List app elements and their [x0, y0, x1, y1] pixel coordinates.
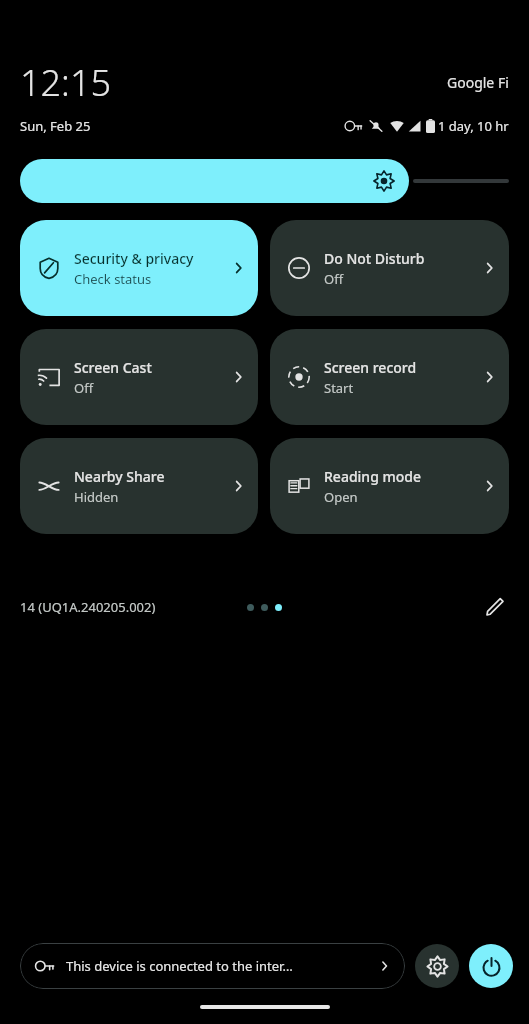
button[interactable]: Screen record	[270, 329, 509, 425]
button[interactable]: Security & privacy	[20, 220, 258, 316]
staticText: This device is connected to the inter…	[66, 957, 371, 975]
staticText: 12:15	[20, 58, 112, 107]
button[interactable]: Brightness	[20, 159, 409, 203]
staticText: Start	[324, 379, 354, 397]
button[interactable]: Screen Cast	[20, 329, 258, 425]
button[interactable]: Power	[469, 944, 513, 988]
staticText: Off	[324, 270, 344, 288]
staticText: Reading mode	[324, 467, 421, 486]
staticText: Open	[324, 488, 358, 506]
staticText: Screen record	[324, 358, 417, 377]
staticText: Do Not Disturb	[324, 249, 425, 268]
button[interactable]: Edit tiles	[477, 589, 513, 625]
staticText: Nearby Share	[74, 467, 165, 486]
staticText: Check status	[74, 270, 152, 288]
button[interactable]: Nearby Share	[20, 438, 258, 534]
staticText: Google Fi	[447, 73, 509, 92]
staticText: Sun, Feb 25	[20, 117, 91, 135]
button[interactable]: Reading mode	[270, 438, 509, 534]
staticText: Screen Cast	[74, 358, 152, 377]
staticText: 1 day, 10 hr	[438, 117, 509, 135]
button[interactable]: Settings	[415, 944, 459, 988]
staticText: Security & privacy	[74, 249, 194, 268]
button[interactable]: Do Not Disturb	[270, 220, 509, 316]
staticText: Off	[74, 379, 94, 397]
button[interactable]: This device is connected to the inter…	[20, 943, 405, 989]
staticText: 14 (UQ1A.240205.002)	[20, 598, 156, 616]
staticText: Hidden	[74, 488, 119, 506]
